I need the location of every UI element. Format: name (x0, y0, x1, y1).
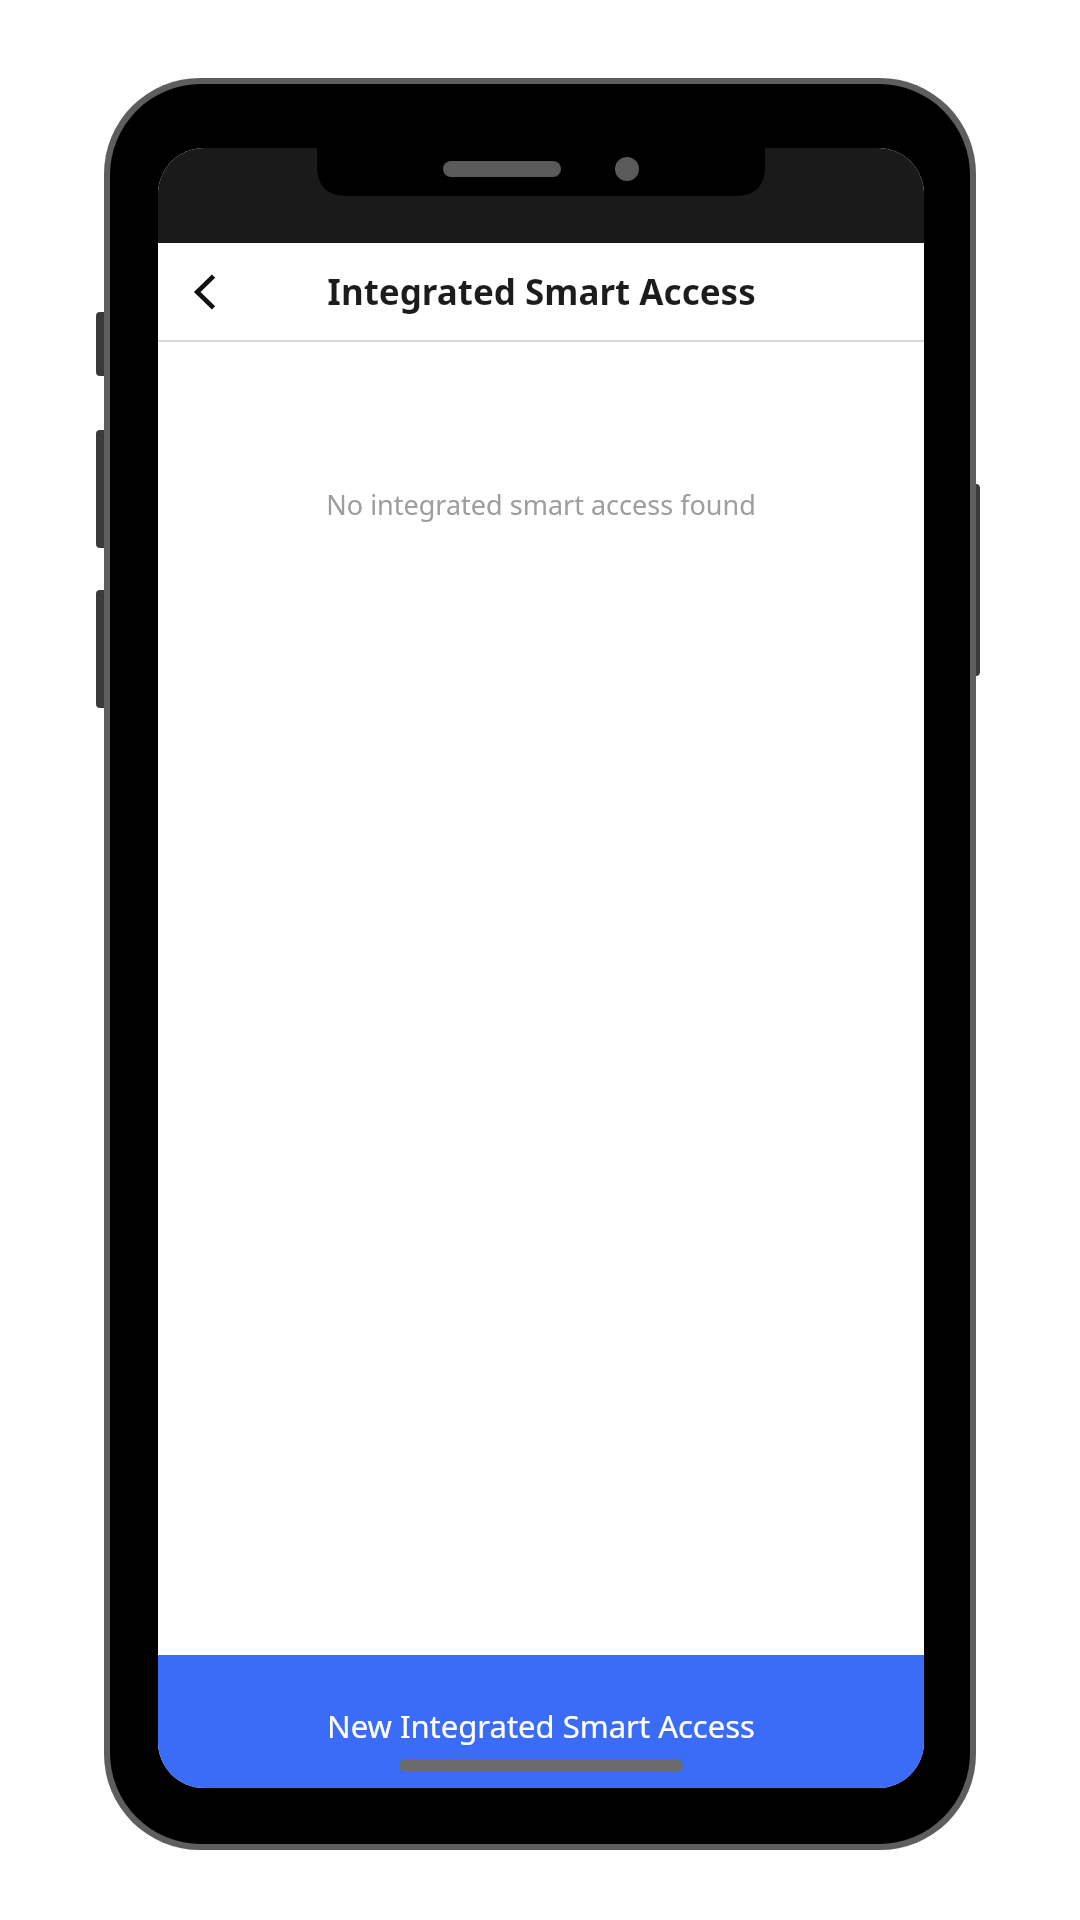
button[interactable]: New Integrated Smart Access (158, 1655, 924, 1788)
staticText: No integrated smart access found (326, 486, 756, 523)
staticText: New Integrated Smart Access (327, 1705, 755, 1747)
staticText: Integrated Smart Access (327, 268, 756, 316)
button[interactable]: Back (164, 250, 248, 334)
